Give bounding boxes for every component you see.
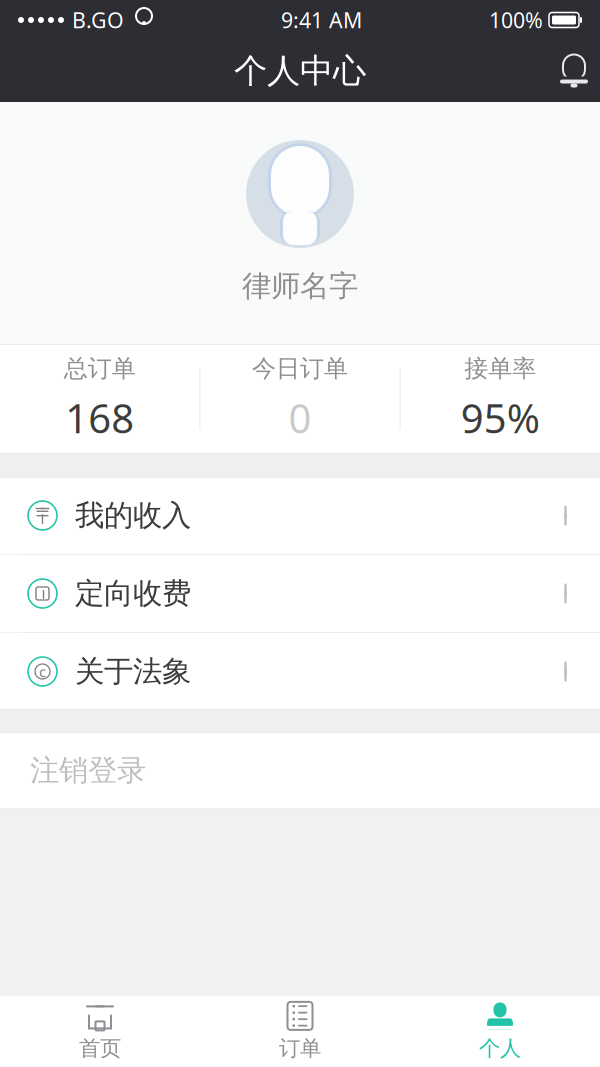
button[interactable]: 我的收入 <box>0 477 600 555</box>
staticText: 注销登录 <box>30 752 146 788</box>
button[interactable]: 注销登录 <box>0 732 600 809</box>
staticText: 今日订单 <box>252 354 348 383</box>
staticText: B.GO <box>72 6 124 34</box>
button[interactable]: 首页 <box>0 995 200 1067</box>
staticText: 律师名字 <box>242 268 358 304</box>
staticText: 95% <box>461 391 540 444</box>
staticText: 个人中心 <box>234 50 366 91</box>
staticText: 定向收费 <box>75 575 191 611</box>
staticText: 总订单 <box>64 354 136 383</box>
button[interactable]: Notifications <box>548 43 600 99</box>
staticText: 接单率 <box>464 354 536 383</box>
staticText: 100% <box>489 6 543 34</box>
button[interactable]: c <box>0 633 600 710</box>
button[interactable]: 订单 <box>200 995 400 1067</box>
staticText: 我的收入 <box>75 497 191 533</box>
button[interactable]: 定向收费 <box>0 555 600 633</box>
staticText: 关于法象 <box>75 653 191 689</box>
button[interactable]: 个人 <box>400 995 600 1067</box>
staticText: 个人 <box>479 1035 521 1062</box>
staticText: 0 <box>288 391 311 444</box>
staticText: 订单 <box>279 1035 321 1062</box>
staticText: c <box>39 662 46 681</box>
staticText: 首页 <box>79 1035 121 1062</box>
staticText: 168 <box>65 391 134 444</box>
staticText: 9:41 AM <box>281 6 362 34</box>
